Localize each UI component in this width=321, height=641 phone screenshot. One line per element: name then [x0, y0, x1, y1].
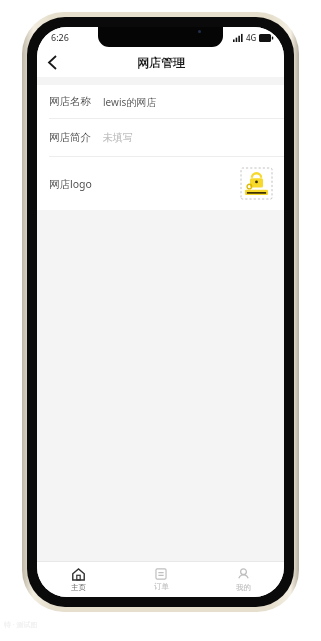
button[interactable]: 我的 [202, 562, 284, 597]
button[interactable]: 订单 [120, 562, 202, 597]
button[interactable]: Back [37, 47, 67, 77]
staticText: 我的 [236, 583, 251, 592]
staticText: 特 · 测试图 [4, 620, 38, 630]
staticText: 主页 [71, 583, 86, 592]
staticText: 未填写 [103, 131, 133, 144]
staticText: lewis的网店 [103, 95, 157, 109]
staticText: 4G [246, 32, 257, 43]
button[interactable]: 主页 [37, 562, 120, 597]
staticText: 网店名称 [49, 95, 91, 108]
staticText: 订单 [154, 582, 169, 591]
staticText: 网店简介 [49, 131, 91, 144]
button[interactable]: 网店logo [37, 157, 284, 210]
staticText: 网店管理 [137, 55, 185, 70]
button[interactable]: 网店简介 [37, 119, 284, 156]
button[interactable]: 网店名称 [37, 85, 284, 118]
staticText: 网店logo [49, 177, 92, 191]
staticText: 6:26 [51, 31, 69, 43]
